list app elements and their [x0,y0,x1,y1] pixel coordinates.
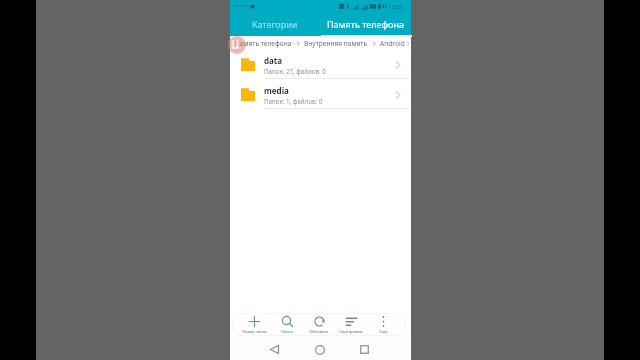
button[interactable]: Новая папка [238,314,271,335]
staticText: Ещё [379,329,388,334]
staticText: Папок: 1, файлов: 0 [264,97,323,105]
staticText: Новая папка [242,329,267,334]
staticText: Beeline [234,3,249,9]
button[interactable]: Поиск [271,314,303,335]
button[interactable]: Back [265,340,284,359]
staticText: Поиск [281,329,293,334]
staticText: Обновить [309,329,329,334]
staticText: Внутренняя память [304,39,368,48]
staticText: Android [380,39,405,48]
staticText: Папок: 27, файлов: 0 [264,67,326,75]
staticText: Категории [252,18,298,30]
staticText: Память телефона [235,39,292,48]
button[interactable]: Память телефона [320,12,411,36]
button[interactable]: Обновить [303,314,335,335]
button[interactable]: media [230,79,411,109]
button[interactable]: Android [380,39,405,48]
staticText: Память телефона [327,18,404,30]
button[interactable]: data [230,49,411,79]
button[interactable]: Категории [230,12,320,36]
button[interactable]: Home [310,340,329,359]
button[interactable]: Ещё [367,314,399,335]
button[interactable]: Память телефона [235,39,292,48]
staticText: media [264,85,289,96]
button[interactable]: Сортировка [335,314,367,335]
staticText: 16:25 [389,3,403,10]
staticText: data [264,55,283,66]
button[interactable]: Внутренняя память [304,39,368,48]
button[interactable]: Recent apps [355,340,374,359]
staticText: Сортировка [339,329,363,334]
